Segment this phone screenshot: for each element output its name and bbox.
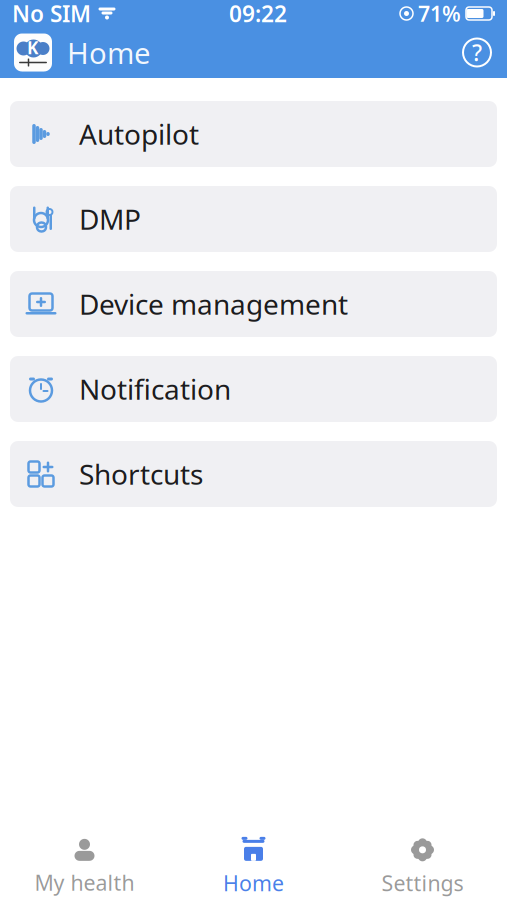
- staticText: 09:22: [229, 0, 287, 28]
- button[interactable]: Autopilot: [10, 101, 497, 167]
- staticText: Settings: [381, 869, 463, 897]
- button[interactable]: Notification: [10, 356, 497, 422]
- staticText: Notification: [79, 370, 231, 408]
- button[interactable]: Device management: [10, 271, 497, 337]
- staticText: Device management: [79, 285, 348, 323]
- button[interactable]: My health: [0, 835, 169, 900]
- staticText: Autopilot: [79, 115, 199, 153]
- button[interactable]: Shortcuts: [10, 441, 497, 507]
- staticText: K: [27, 36, 39, 59]
- staticText: 71%: [418, 0, 461, 28]
- staticText: Home: [67, 33, 151, 72]
- staticText: DMP: [79, 200, 141, 238]
- staticText: No SIM: [12, 0, 91, 28]
- button[interactable]: Home: [169, 835, 338, 900]
- button[interactable]: Help: [455, 30, 499, 74]
- staticText: My health: [34, 868, 134, 897]
- staticText: Home: [223, 869, 284, 897]
- staticText: Shortcuts: [79, 455, 203, 493]
- staticText: ?: [472, 37, 482, 67]
- button[interactable]: Settings: [338, 835, 507, 900]
- button[interactable]: DMP: [10, 186, 497, 252]
